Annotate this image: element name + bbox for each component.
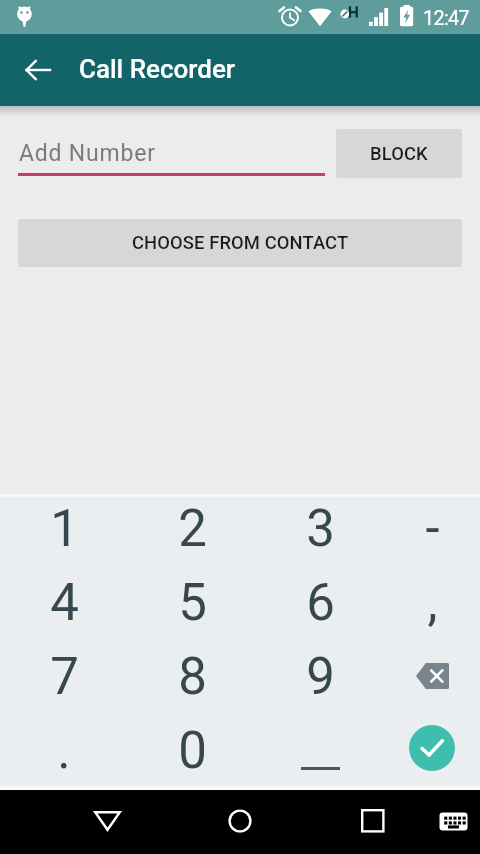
staticText: 8: [178, 647, 207, 707]
staticText: CHOOSE FROM CONTACT: [132, 232, 349, 254]
button[interactable]: [256, 714, 384, 788]
staticText: 12:47: [423, 6, 469, 29]
button[interactable]: CHOOSE FROM CONTACT: [18, 219, 462, 267]
button[interactable]: 1: [0, 492, 128, 566]
staticText: 7: [50, 647, 79, 707]
button[interactable]: BLOCK: [336, 129, 462, 178]
button[interactable]: Add Number: [18, 130, 325, 176]
staticText: .: [57, 721, 71, 781]
button[interactable]: 4: [0, 566, 128, 640]
staticText: BLOCK: [370, 143, 428, 165]
staticText: 5: [178, 573, 207, 633]
staticText: -: [425, 499, 440, 559]
button[interactable]: 3: [256, 492, 384, 566]
button[interactable]: 0: [128, 714, 256, 788]
other: Done: [409, 725, 455, 771]
button[interactable]: 6: [256, 566, 384, 640]
staticText: Call Recorder: [79, 54, 236, 84]
button[interactable]: ,: [384, 566, 480, 640]
button[interactable]: 5: [128, 566, 256, 640]
staticText: 3: [306, 499, 335, 559]
staticText: ,: [427, 573, 438, 633]
button[interactable]: 9: [256, 640, 384, 714]
staticText: 6: [306, 573, 335, 633]
button[interactable]: Recents: [351, 799, 395, 843]
button[interactable]: Done: [384, 714, 480, 788]
button[interactable]: -: [384, 492, 480, 566]
staticText: 1: [50, 499, 79, 559]
staticText: 9: [306, 647, 335, 707]
button[interactable]: Backspace: [384, 640, 480, 714]
staticText: 2: [178, 499, 207, 559]
staticText: 4: [50, 573, 79, 633]
button[interactable]: Keyboard: [433, 801, 473, 841]
staticText: 0: [178, 721, 207, 781]
other: Backspace: [416, 663, 449, 689]
button[interactable]: 7: [0, 640, 128, 714]
button[interactable]: 2: [128, 492, 256, 566]
button[interactable]: .: [0, 714, 128, 788]
button[interactable]: Home: [218, 799, 262, 843]
staticText: Add Number: [19, 140, 156, 167]
button[interactable]: Back: [85, 799, 129, 843]
button[interactable]: 8: [128, 640, 256, 714]
button[interactable]: Navigate up: [14, 46, 62, 94]
